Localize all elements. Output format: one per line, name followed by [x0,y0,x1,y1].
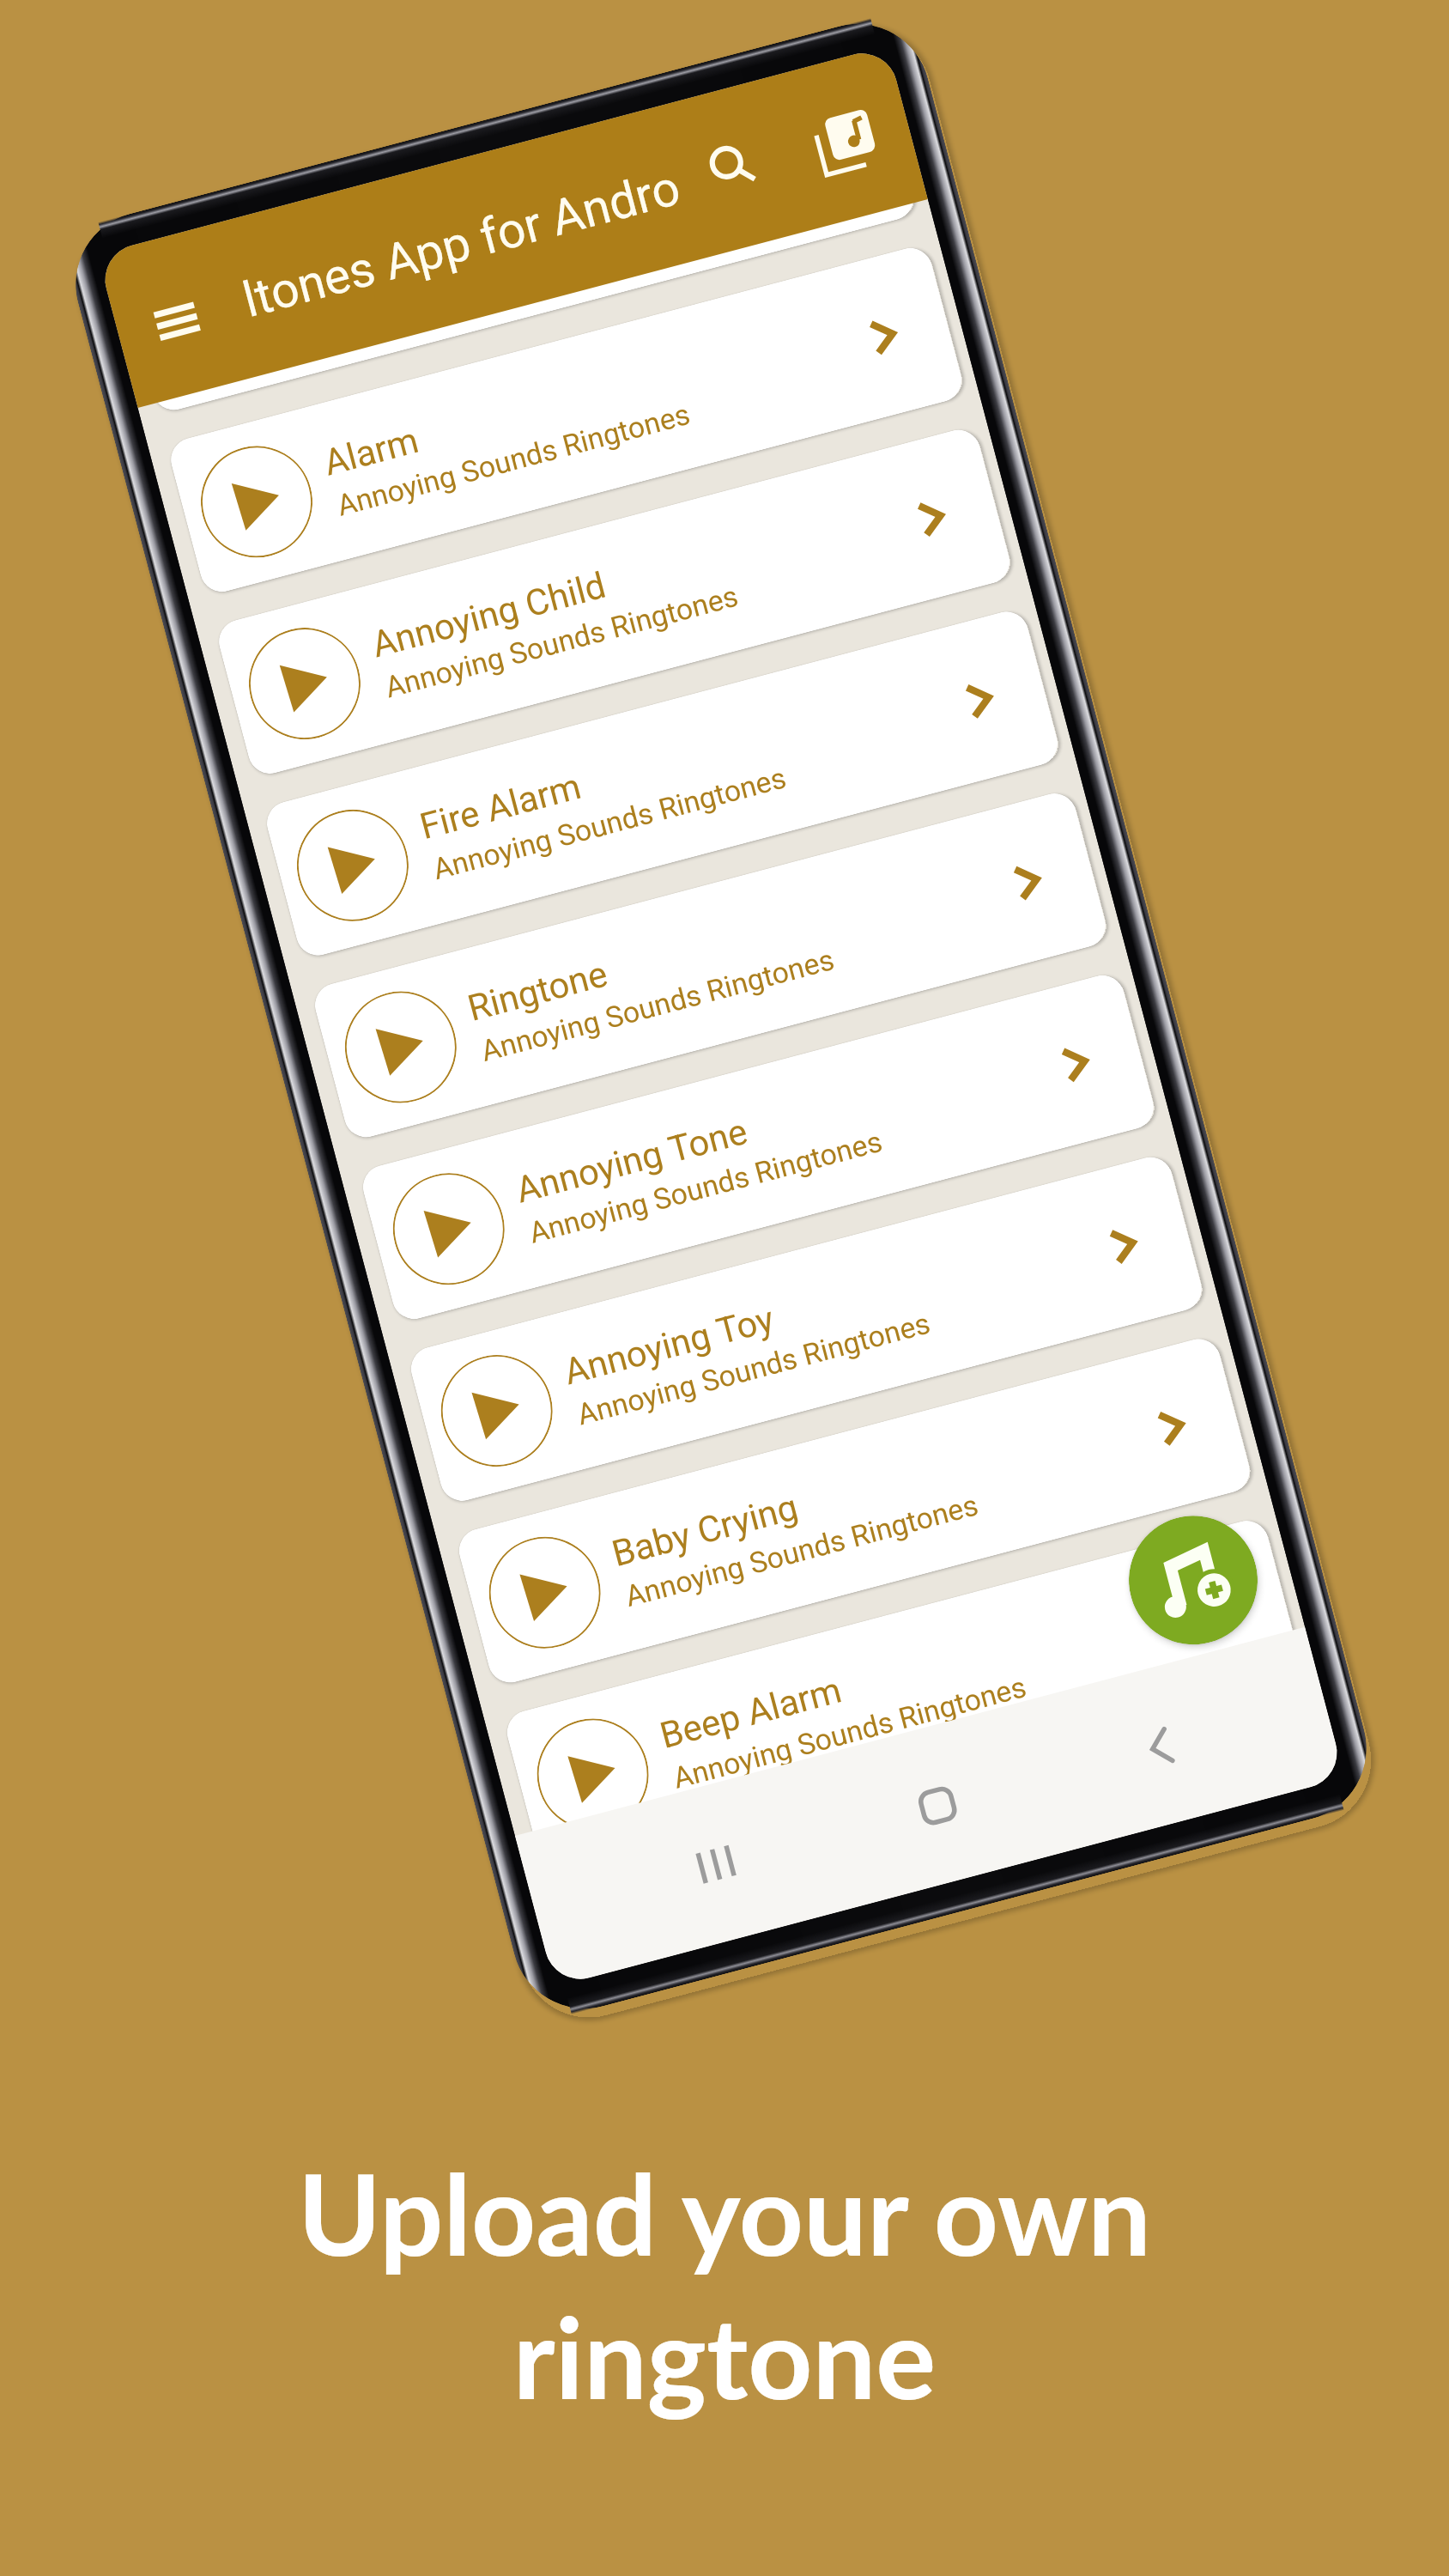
staticText: Annoying Sounds Ringtones [429,760,790,886]
staticText: Annoying Sounds Ringtones [477,942,838,1068]
button[interactable]: Annoying Toy [406,1152,1207,1506]
button[interactable]: Recents [681,1830,751,1899]
button[interactable]: Beep Alarm [502,1516,1303,1869]
staticText: Annoying Sounds Ringtones [669,1669,1030,1795]
staticText: Annoying Child [367,564,611,666]
button[interactable]: Back [1126,1712,1196,1781]
staticText: Annoying Tone [511,1110,752,1211]
staticText: Annoying Sounds Ringtones [621,1487,982,1614]
button[interactable]: Add ringtone [1115,1501,1272,1659]
button[interactable]: Alarm [166,243,966,597]
staticText: Annoying Toy [560,1297,779,1393]
staticText: Ringtone [463,952,612,1030]
button[interactable]: Ringtone [310,789,1111,1142]
button[interactable]: Search [695,130,771,206]
staticText: Upload your own ringtone [298,2145,1151,2422]
button[interactable]: Beep Alarm [118,61,919,415]
button[interactable]: Menu [141,289,213,353]
staticText: Beep Alarm [271,214,462,302]
staticText: Fire Alarm [415,765,586,848]
button[interactable]: Annoying Child [214,425,1015,779]
staticText: Annoying Sounds Ringtones [285,215,646,341]
staticText: Baby Crying [607,1486,803,1575]
button[interactable]: My ringtones [808,104,884,179]
staticText: Annoying Sounds Ringtones [333,396,694,523]
staticText: Alarm [319,419,423,484]
button[interactable]: Fire Alarm [262,607,1063,960]
button[interactable]: Home [903,1771,972,1840]
staticText: Annoying Sounds Ringtones [525,1124,886,1250]
staticText: Annoying Sounds Ringtones [573,1306,934,1432]
button[interactable]: Annoying Tone [358,970,1159,1324]
button[interactable]: Baby Crying [454,1334,1255,1688]
staticText: Beep Alarm [656,1668,846,1757]
staticText: ltones App for Andro [237,159,686,329]
staticText: Annoying Sounds Ringtones [381,578,742,705]
